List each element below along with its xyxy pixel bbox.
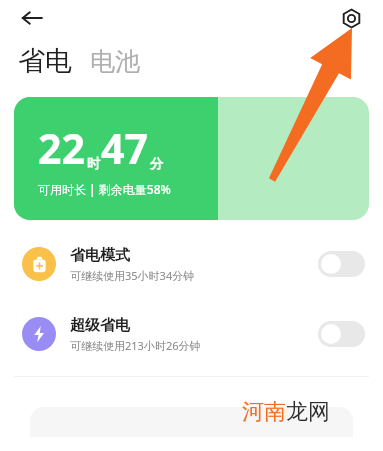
staticText: 22 bbox=[38, 120, 85, 176]
staticText: 分 bbox=[150, 155, 163, 171]
button[interactable]: 电池 bbox=[90, 47, 140, 78]
staticText: 省电 bbox=[18, 44, 72, 78]
staticText: 可用时长 | 剩余电量58% bbox=[38, 181, 171, 197]
staticText: 47 bbox=[101, 120, 148, 176]
staticText: 可继续使用35小时34分钟 bbox=[70, 268, 195, 283]
staticText: 龙网 bbox=[286, 398, 330, 426]
button[interactable]: 22 bbox=[14, 97, 369, 220]
staticText: 可继续使用213小时26分钟 bbox=[70, 338, 201, 353]
button[interactable]: 省电 bbox=[18, 44, 72, 78]
staticText: 时 bbox=[87, 155, 100, 171]
staticText: 省电模式 bbox=[70, 246, 130, 265]
button[interactable]: 省电模式 bbox=[0, 238, 383, 290]
staticText: 超级省电 bbox=[70, 316, 130, 335]
button[interactable]: Settings bbox=[333, 0, 369, 36]
staticText: 电池 bbox=[90, 46, 140, 77]
button[interactable]: Back bbox=[12, 0, 52, 36]
button[interactable] bbox=[30, 407, 353, 437]
button[interactable]: 超级省电 toggle bbox=[318, 321, 365, 347]
button[interactable]: 省电模式 toggle bbox=[318, 251, 365, 277]
button[interactable]: 超级省电 bbox=[0, 308, 383, 360]
staticText: 河南 bbox=[242, 398, 286, 426]
